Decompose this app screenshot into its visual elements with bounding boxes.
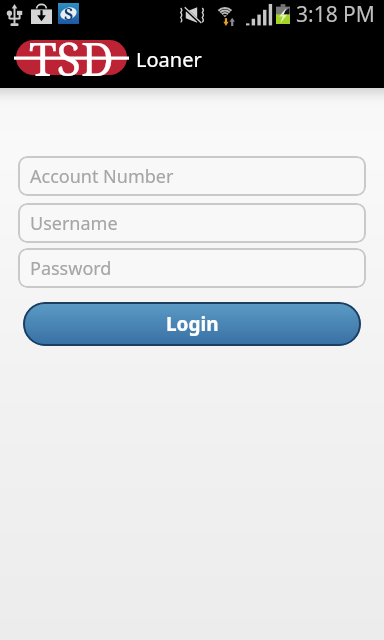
staticText: Username bbox=[30, 211, 118, 236]
other: USB connected bbox=[6, 4, 23, 26]
staticText: S bbox=[64, 3, 74, 24]
staticText: Password bbox=[30, 256, 112, 281]
button[interactable]: Username bbox=[18, 203, 366, 243]
other: Wi-Fi signal bbox=[214, 3, 240, 26]
other: Skype bbox=[58, 3, 79, 24]
staticText: Account Number bbox=[30, 164, 174, 189]
staticText: Login bbox=[166, 311, 219, 337]
other: Mobile signal strength bbox=[246, 3, 269, 26]
other: Vibrate mode bbox=[179, 7, 205, 23]
staticText: TSD bbox=[29, 28, 114, 88]
other: Download complete bbox=[31, 4, 52, 24]
button[interactable]: Password bbox=[18, 248, 366, 288]
staticText: 3:18 PM bbox=[296, 0, 375, 28]
button[interactable]: Account Number bbox=[18, 156, 366, 196]
other: Battery charging bbox=[276, 2, 290, 24]
staticText: Loaner bbox=[136, 46, 202, 73]
button[interactable]: Login bbox=[23, 302, 361, 346]
